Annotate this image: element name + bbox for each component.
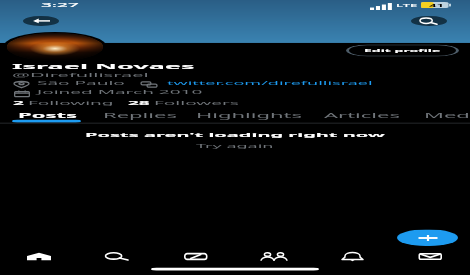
staticText: twitter.com/direfullisrael	[167, 79, 373, 86]
button[interactable]: Communities	[236, 246, 312, 267]
staticText: Articles	[324, 111, 400, 119]
staticText: 2	[13, 99, 24, 106]
staticText: 3:27	[41, 1, 79, 9]
staticText: Posts aren't loading right now	[85, 131, 385, 139]
button[interactable]: Notifications	[314, 246, 390, 267]
staticText: Joined March 2010	[37, 88, 203, 95]
button[interactable]: Try again	[196, 142, 274, 149]
button[interactable]: Profile photo	[7, 33, 103, 61]
staticText: Replies	[103, 111, 177, 119]
staticText: Highlights	[196, 111, 303, 119]
button[interactable]: Messages	[392, 246, 468, 267]
button[interactable]: Posts	[18, 107, 78, 123]
button[interactable]: Compose post	[397, 229, 458, 246]
button[interactable]: twitter.com/direfullisrael	[167, 79, 373, 86]
staticText: 41	[429, 3, 444, 8]
staticText: Israel Novaes	[12, 60, 195, 71]
button[interactable]: Back	[23, 16, 59, 26]
staticText: Edit profile	[364, 48, 441, 53]
button[interactable]: Edit profile	[346, 44, 459, 57]
button[interactable]: Search	[411, 16, 447, 26]
staticText: Followers	[154, 99, 239, 106]
staticText: 28	[128, 99, 150, 106]
staticText: @Direfullisrael	[12, 70, 149, 78]
button[interactable]: Search	[79, 246, 155, 267]
button[interactable]: 2	[13, 99, 114, 106]
staticText: LTE	[396, 3, 418, 8]
button[interactable]: Home	[1, 246, 77, 267]
staticText: Media	[424, 111, 470, 119]
staticText: Try again	[196, 142, 274, 149]
button[interactable]: Grok	[158, 246, 234, 267]
staticText: São Paulo	[37, 79, 125, 86]
button[interactable]: Articles	[324, 107, 400, 123]
button[interactable]: Replies	[103, 107, 177, 123]
staticText: Posts	[18, 111, 78, 119]
button[interactable]: 28	[128, 99, 239, 106]
staticText: Following	[28, 99, 114, 106]
button[interactable]: Highlights	[196, 107, 303, 123]
button[interactable]: Media	[424, 107, 470, 123]
